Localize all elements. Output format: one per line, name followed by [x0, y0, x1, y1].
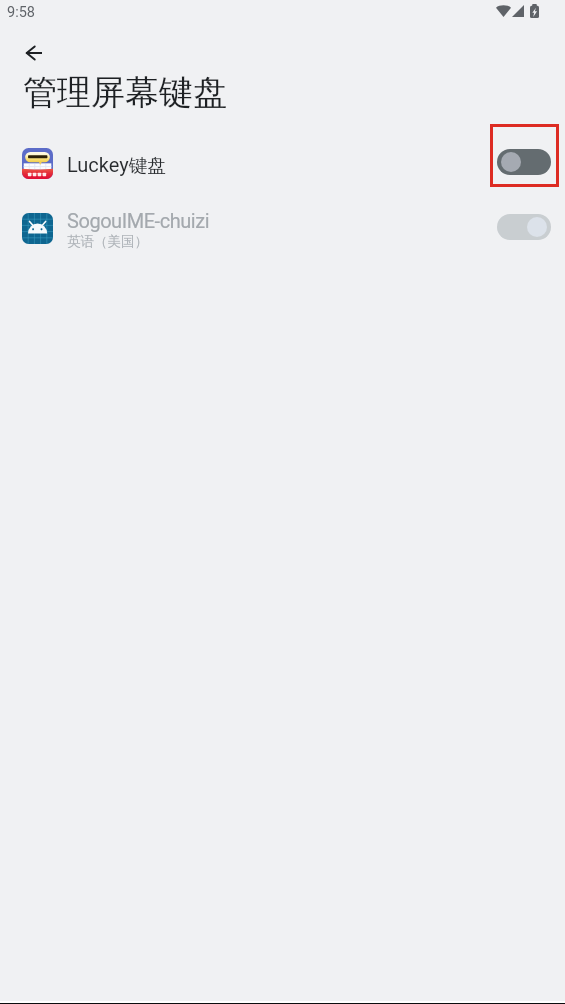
staticText: 9:58 [7, 4, 35, 21]
staticText: 管理屏幕键盘 [23, 71, 227, 114]
staticText: Luckey键盘 [67, 153, 166, 177]
button[interactable]: Luckey键盘 [0, 131, 565, 196]
staticText: SogouIME-chuizi [67, 209, 210, 232]
button[interactable]: On [497, 214, 551, 240]
button[interactable]: Back [10, 29, 58, 77]
button[interactable]: Off [497, 149, 551, 175]
staticText: 英语（美国） [67, 233, 148, 250]
button[interactable]: SogouIME-chuizi [0, 196, 565, 261]
